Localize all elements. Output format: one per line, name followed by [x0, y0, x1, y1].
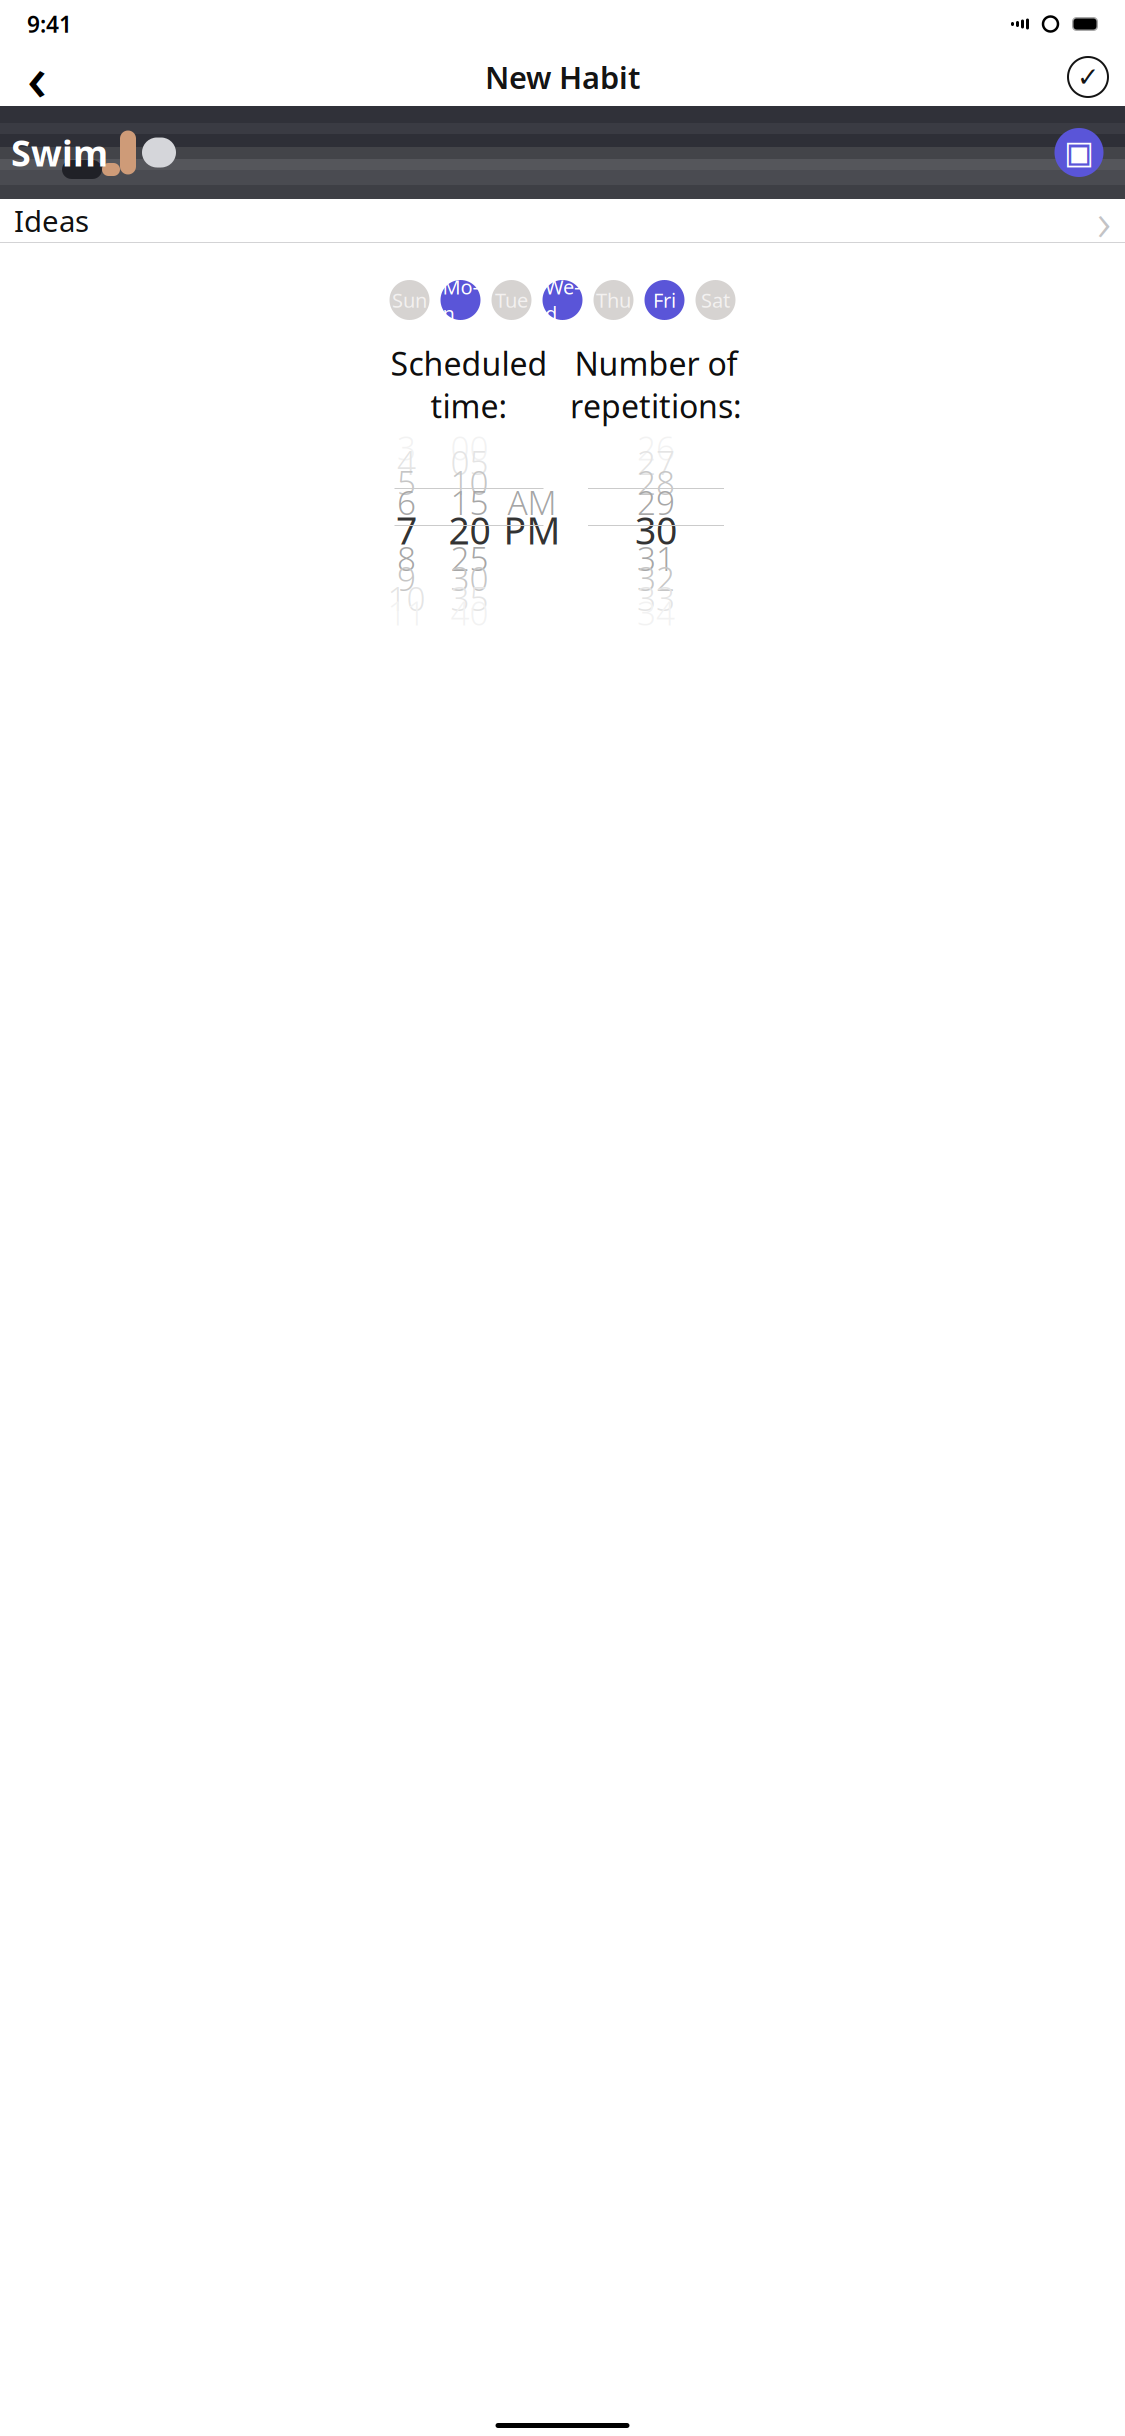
staticText: 4 — [397, 440, 416, 484]
staticText: 34 — [637, 590, 675, 635]
staticText: 7 — [396, 505, 417, 555]
staticText: 26 — [637, 425, 675, 470]
staticText: Swim — [11, 129, 108, 176]
button[interactable]: Change photo — [1048, 121, 1110, 183]
staticText: 6 — [397, 480, 416, 524]
button[interactable]: Back — [12, 48, 62, 106]
staticText: › — [1097, 185, 1111, 256]
staticText: ‹ — [27, 36, 47, 118]
staticText: Ideas — [14, 201, 89, 240]
staticText: Sun — [392, 287, 427, 313]
button[interactable]: Tue — [491, 280, 531, 320]
staticText: Number of — [574, 342, 737, 384]
staticText: Fri — [653, 287, 676, 313]
staticText: 35 — [450, 576, 488, 620]
button[interactable]: Fri — [644, 280, 684, 320]
staticText: Thu — [596, 287, 631, 313]
staticText: Sat — [701, 287, 730, 313]
button[interactable]: Wed — [542, 280, 582, 320]
staticText: AM — [507, 480, 556, 524]
staticText: 32 — [637, 556, 675, 600]
staticText: Wed — [545, 273, 580, 326]
staticText: 10 — [387, 576, 425, 620]
staticText: time: — [430, 384, 507, 427]
button[interactable]: Thu — [593, 280, 633, 320]
staticText: 5 — [397, 460, 416, 504]
staticText: 20 — [448, 505, 490, 555]
staticText: 27 — [637, 440, 675, 484]
staticText: 00 — [450, 425, 488, 470]
staticText: 30 — [635, 505, 677, 555]
staticText: ✓ — [1077, 62, 1099, 92]
staticText: repetitions: — [570, 384, 742, 427]
staticText: 05 — [450, 440, 488, 484]
staticText: 15 — [450, 480, 488, 524]
staticText: 3 — [397, 425, 416, 470]
staticText: New Habit — [485, 57, 640, 97]
staticText: 25 — [450, 536, 488, 580]
staticText: ▣ — [1064, 134, 1094, 171]
staticText: 8 — [397, 536, 416, 580]
button[interactable]: Sun — [389, 280, 429, 320]
staticText: 33 — [637, 576, 675, 620]
button[interactable]: Mon — [440, 280, 480, 320]
staticText: 9 — [397, 556, 416, 600]
button[interactable]: Save habit — [1063, 48, 1113, 106]
staticText: Mon — [442, 273, 478, 326]
staticText: 29 — [637, 480, 675, 524]
button[interactable]: Sat — [695, 280, 735, 320]
button[interactable]: Ideas — [0, 199, 1125, 242]
staticText: 10 — [450, 460, 488, 504]
staticText: 31 — [637, 536, 675, 580]
staticText: 30 — [450, 556, 488, 600]
staticText: Tue — [495, 287, 528, 313]
staticText: Scheduled — [390, 342, 547, 384]
staticText: 28 — [637, 460, 675, 504]
staticText: 40 — [450, 590, 488, 635]
staticText: PM — [503, 505, 560, 555]
staticText: 9:41 — [27, 9, 72, 39]
staticText: 11 — [387, 590, 425, 635]
